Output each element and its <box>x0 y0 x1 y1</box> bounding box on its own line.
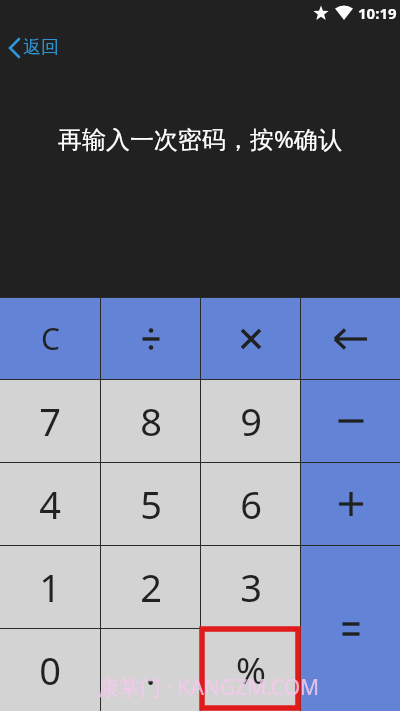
button[interactable]: C <box>0 298 100 379</box>
button[interactable]: . <box>101 629 200 711</box>
button[interactable]: % <box>201 629 300 711</box>
staticText: 6 <box>240 478 262 530</box>
staticText: 9 <box>240 395 262 447</box>
button[interactable]: 1 <box>0 546 100 628</box>
button[interactable] <box>201 298 300 379</box>
staticText: . <box>145 644 156 696</box>
staticText: 1 <box>39 561 61 613</box>
staticText: 0 <box>39 644 61 696</box>
staticText: % <box>236 646 266 695</box>
staticText: 3 <box>240 561 262 613</box>
staticText: 返回 <box>23 36 59 59</box>
button[interactable]: 2 <box>101 546 200 628</box>
button[interactable]: 4 <box>0 463 100 545</box>
button[interactable]: 6 <box>201 463 300 545</box>
button[interactable] <box>301 380 400 462</box>
staticText: 7 <box>39 395 61 447</box>
button[interactable]: 5 <box>101 463 200 545</box>
staticText: 10:19 <box>358 3 397 23</box>
staticText: 4 <box>39 478 61 530</box>
staticText: 再输入一次密码，按%确认 <box>58 122 342 155</box>
button[interactable]: 3 <box>201 546 300 628</box>
staticText: 5 <box>140 478 162 530</box>
staticText: 2 <box>140 561 162 613</box>
staticText: 康掌门 · KANGZM.COM <box>98 673 320 702</box>
staticText: C <box>41 318 60 359</box>
button[interactable]: 7 <box>0 380 100 462</box>
button[interactable] <box>301 463 400 545</box>
button[interactable] <box>101 298 200 379</box>
button[interactable]: 0 <box>0 629 100 711</box>
button[interactable]: 9 <box>201 380 300 462</box>
button[interactable] <box>301 546 400 711</box>
staticText: 8 <box>140 395 162 447</box>
button[interactable]: 8 <box>101 380 200 462</box>
button[interactable] <box>301 298 400 379</box>
button[interactable]: 返回 <box>8 36 59 59</box>
